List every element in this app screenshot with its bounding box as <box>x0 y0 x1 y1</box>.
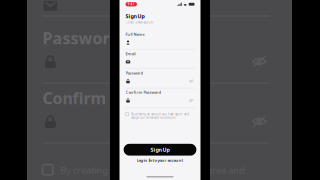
staticText: Password <box>42 27 119 49</box>
staticText: Confirm Password <box>125 89 160 95</box>
button[interactable]: By creating an account you have agree an… <box>125 112 194 119</box>
button[interactable]: Show Confirm Password <box>188 97 194 104</box>
staticText: Password <box>125 70 142 75</box>
button[interactable]: Sign Up <box>124 144 196 156</box>
staticText: Email <box>125 51 135 56</box>
staticText: By creating an account you have agree an… <box>60 164 245 180</box>
button[interactable]: Login Into your account <box>136 158 183 163</box>
staticText: Sign Up <box>125 13 144 20</box>
staticText: 9:41 <box>128 2 135 6</box>
staticText: By creating an account you have agree an… <box>131 112 189 119</box>
staticText: Login Into your account <box>136 157 183 163</box>
staticText: Create a New account <box>125 21 153 24</box>
button[interactable]: Show Password <box>188 78 194 84</box>
staticText: Confirm Password <box>42 87 187 109</box>
staticText: Sign Up <box>150 146 169 153</box>
staticText: Full Name <box>125 32 144 37</box>
